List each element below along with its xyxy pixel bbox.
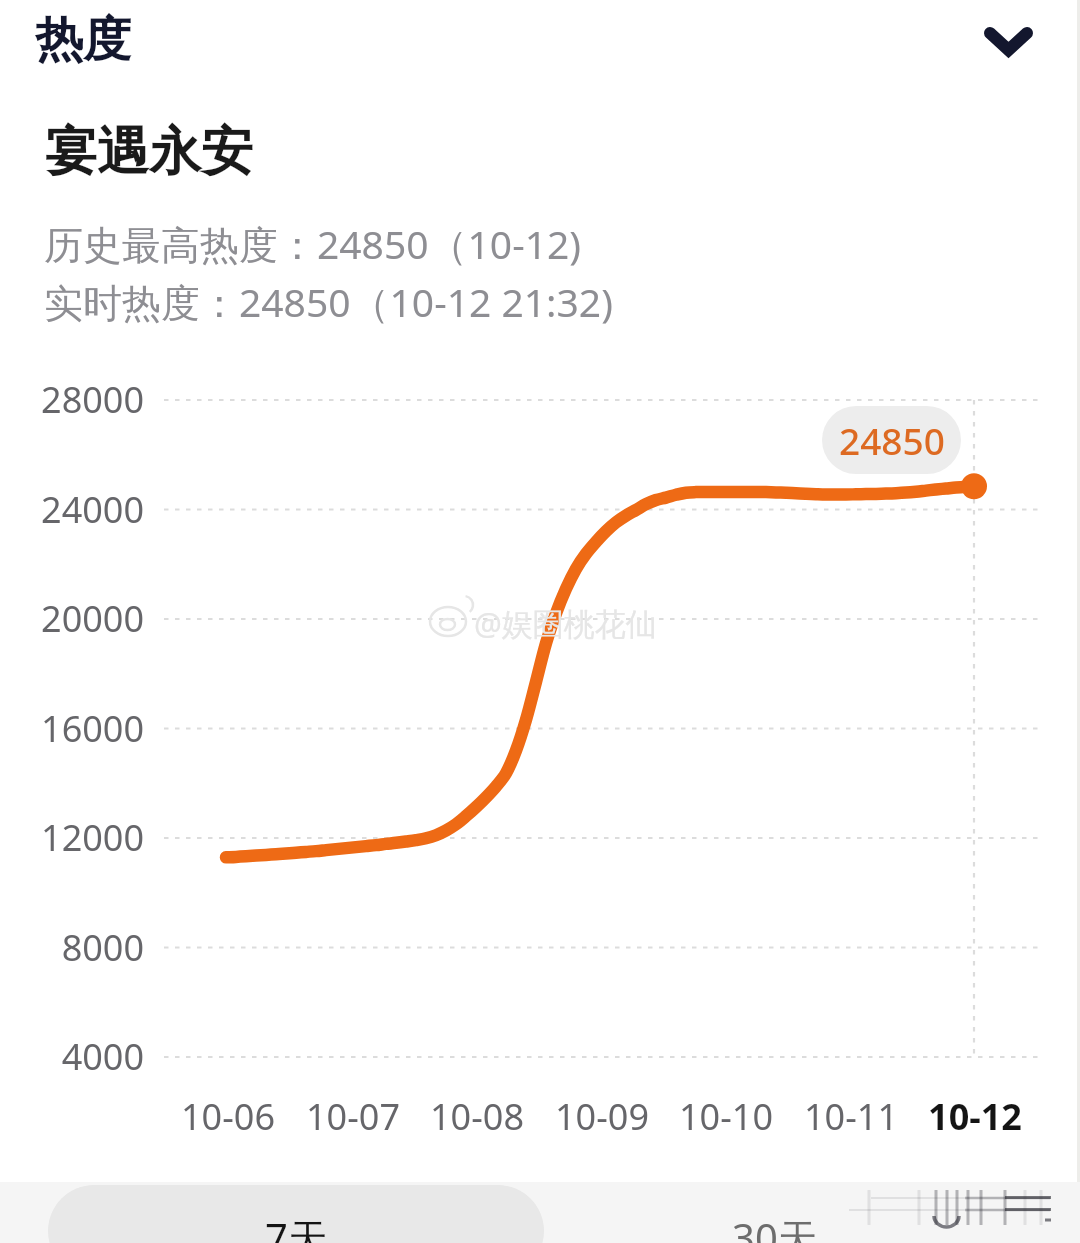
staticText: 10-11 xyxy=(761,1092,941,1141)
staticText: 10-12 xyxy=(885,1092,1065,1141)
staticText: 4000 xyxy=(0,1032,144,1081)
staticText: 实时热度：24850（10-12 21:32) xyxy=(44,275,613,328)
staticText: @娱圈桃花仙 xyxy=(474,602,657,644)
staticText: 28000 xyxy=(0,375,144,424)
staticText: 10-07 xyxy=(263,1092,443,1141)
staticText: 宴遇永安 xyxy=(45,119,253,185)
button[interactable]: 30天 xyxy=(592,1185,958,1243)
staticText: 30天 xyxy=(732,1210,818,1243)
staticText: 10-06 xyxy=(138,1092,318,1141)
staticText: 24850 xyxy=(839,415,945,465)
staticText: 10-10 xyxy=(636,1092,816,1141)
staticText: 16000 xyxy=(0,704,144,753)
staticText: 8000 xyxy=(0,923,144,972)
staticText: 7天 xyxy=(265,1210,328,1243)
staticText: 10-09 xyxy=(512,1092,692,1141)
staticText: 12000 xyxy=(0,813,144,862)
staticText: 10-08 xyxy=(387,1092,567,1141)
button[interactable]: 7天 xyxy=(48,1185,544,1243)
button[interactable]: Collapse xyxy=(960,0,1056,84)
staticText: 历史最高热度：24850（10-12) xyxy=(44,217,582,270)
staticText: 20000 xyxy=(0,594,144,643)
staticText: 热度 xyxy=(35,10,131,70)
staticText: 24000 xyxy=(0,485,144,534)
